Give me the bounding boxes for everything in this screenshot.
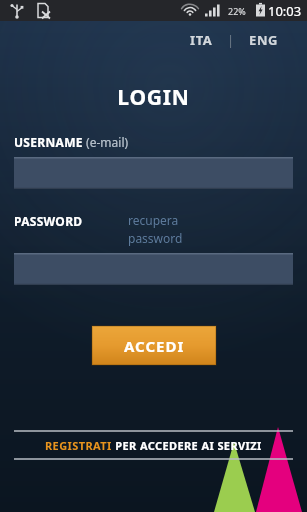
- button[interactable]: [14, 157, 293, 189]
- staticText: |: [227, 31, 235, 49]
- staticText: ACCEDI: [124, 336, 185, 356]
- staticText: 10:03: [268, 2, 302, 20]
- staticText: ITA: [190, 31, 213, 49]
- staticText: LOGIN: [0, 83, 307, 112]
- staticText: REGISTRATI: [45, 438, 112, 453]
- staticText: 22%: [228, 5, 246, 17]
- staticText: recupera: [128, 212, 179, 228]
- button[interactable]: recupera: [128, 212, 183, 246]
- button[interactable]: REGISTRATI: [0, 430, 307, 460]
- button[interactable]: ACCEDI: [92, 326, 216, 365]
- button[interactable]: ITA: [184, 29, 219, 51]
- staticText: USERNAME: [14, 134, 83, 150]
- button[interactable]: ENG: [243, 29, 285, 51]
- staticText: PER ACCEDERE AI SERVIZI: [112, 438, 262, 453]
- staticText: PASSWORD: [14, 213, 83, 229]
- staticText: password: [128, 230, 183, 246]
- button[interactable]: [14, 253, 293, 285]
- staticText: ENG: [249, 31, 279, 49]
- staticText: (e-mail): [83, 134, 129, 150]
